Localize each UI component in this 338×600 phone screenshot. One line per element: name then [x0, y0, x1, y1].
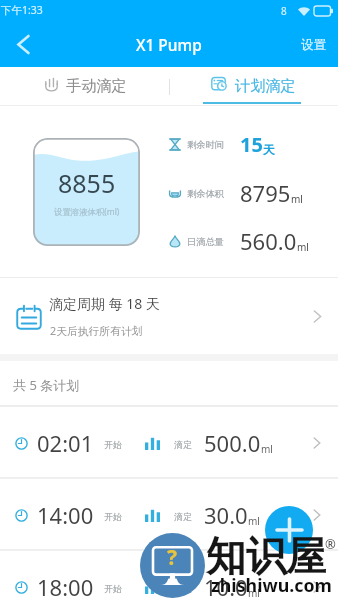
button[interactable]: 手动滴定 [0, 67, 169, 106]
staticText: 8795 [240, 178, 291, 208]
staticText: 02:01 [37, 428, 94, 458]
staticText: 500.0 [204, 428, 261, 458]
button[interactable]: 18:00 [0, 551, 338, 600]
staticText: 设置溶液体积(ml) [54, 206, 120, 217]
staticText: 手动滴定 [66, 76, 127, 95]
staticText: 共 5 条计划 [13, 376, 80, 394]
staticText: 日滴总量 [187, 236, 224, 248]
button[interactable]: Add plan [265, 506, 313, 554]
button[interactable]: 8855 [33, 138, 140, 246]
staticText: 剩余体积 [187, 188, 224, 200]
staticText: 计划滴定 [235, 76, 296, 95]
staticText: 14:00 [37, 500, 94, 530]
staticText: 18:00 [37, 572, 94, 600]
staticText: 天 [263, 142, 275, 157]
staticText: 设置 [301, 37, 326, 53]
staticText: ml [291, 192, 303, 206]
staticText: 560.0 [240, 226, 297, 256]
button[interactable]: 滴定周期 每 18 天 [0, 278, 338, 354]
button[interactable]: 14:00 [0, 479, 338, 551]
staticText: 开始 [104, 511, 122, 522]
staticText: 滴定 [174, 439, 192, 450]
button[interactable]: 计划滴定 [169, 67, 338, 106]
staticText: 下午1:33 [1, 3, 43, 17]
staticText: 2天后执行所有计划 [50, 323, 143, 338]
staticText: X1 Pump [136, 34, 202, 55]
staticText: zhishiwu.com [211, 573, 332, 597]
staticText: 8 [281, 4, 287, 18]
staticText: 开始 [104, 583, 122, 594]
staticText: ml [248, 586, 260, 600]
staticText: ml [261, 442, 273, 456]
staticText: 8855 [58, 166, 116, 200]
button[interactable]: Back [0, 22, 48, 67]
button[interactable]: 设置 [289, 22, 338, 67]
staticText: 10.0 [204, 572, 248, 600]
staticText: 滴定 [174, 511, 192, 522]
staticText: 开始 [104, 439, 122, 450]
staticText: 30.0 [204, 500, 248, 530]
staticText: ? [167, 543, 178, 572]
staticText: 剩余时间 [187, 139, 224, 151]
staticText: 滴定周期 每 18 天 [49, 294, 160, 313]
staticText: ml [248, 514, 260, 528]
staticText: 滴定 [174, 583, 192, 594]
staticText: 知识屋 [206, 531, 326, 581]
staticText: ® [325, 535, 336, 553]
staticText: 15 [240, 131, 263, 158]
staticText: ml [297, 240, 309, 254]
button[interactable]: 02:01 [0, 407, 338, 479]
